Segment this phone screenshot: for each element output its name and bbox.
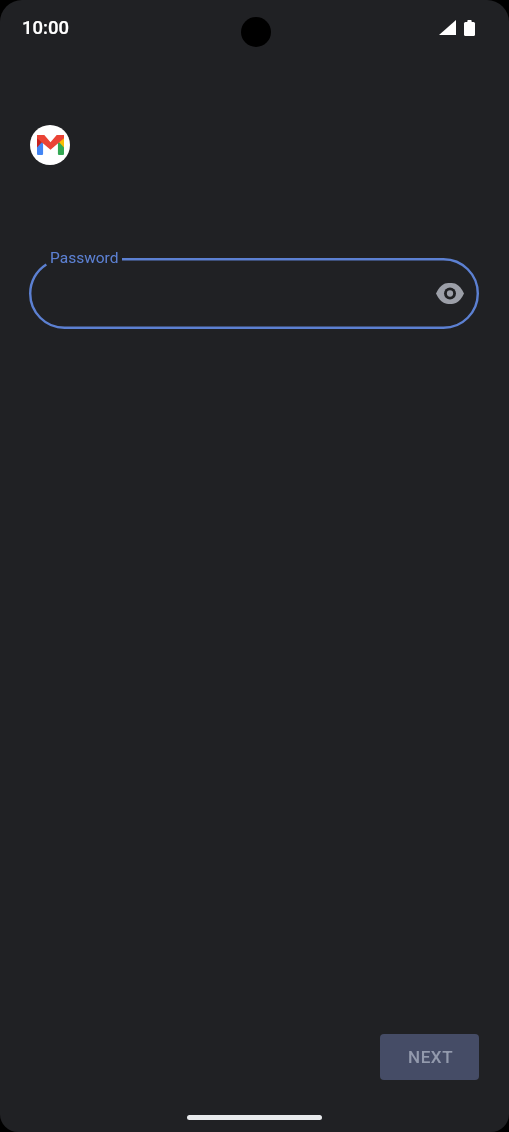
- staticText: Password: [50, 249, 119, 267]
- button[interactable]: NEXT: [380, 1034, 479, 1080]
- staticText: 10:00: [22, 17, 69, 39]
- staticText: NEXT: [408, 1047, 454, 1067]
- button[interactable]: Password: [29, 258, 479, 329]
- button[interactable]: Show password: [428, 271, 472, 315]
